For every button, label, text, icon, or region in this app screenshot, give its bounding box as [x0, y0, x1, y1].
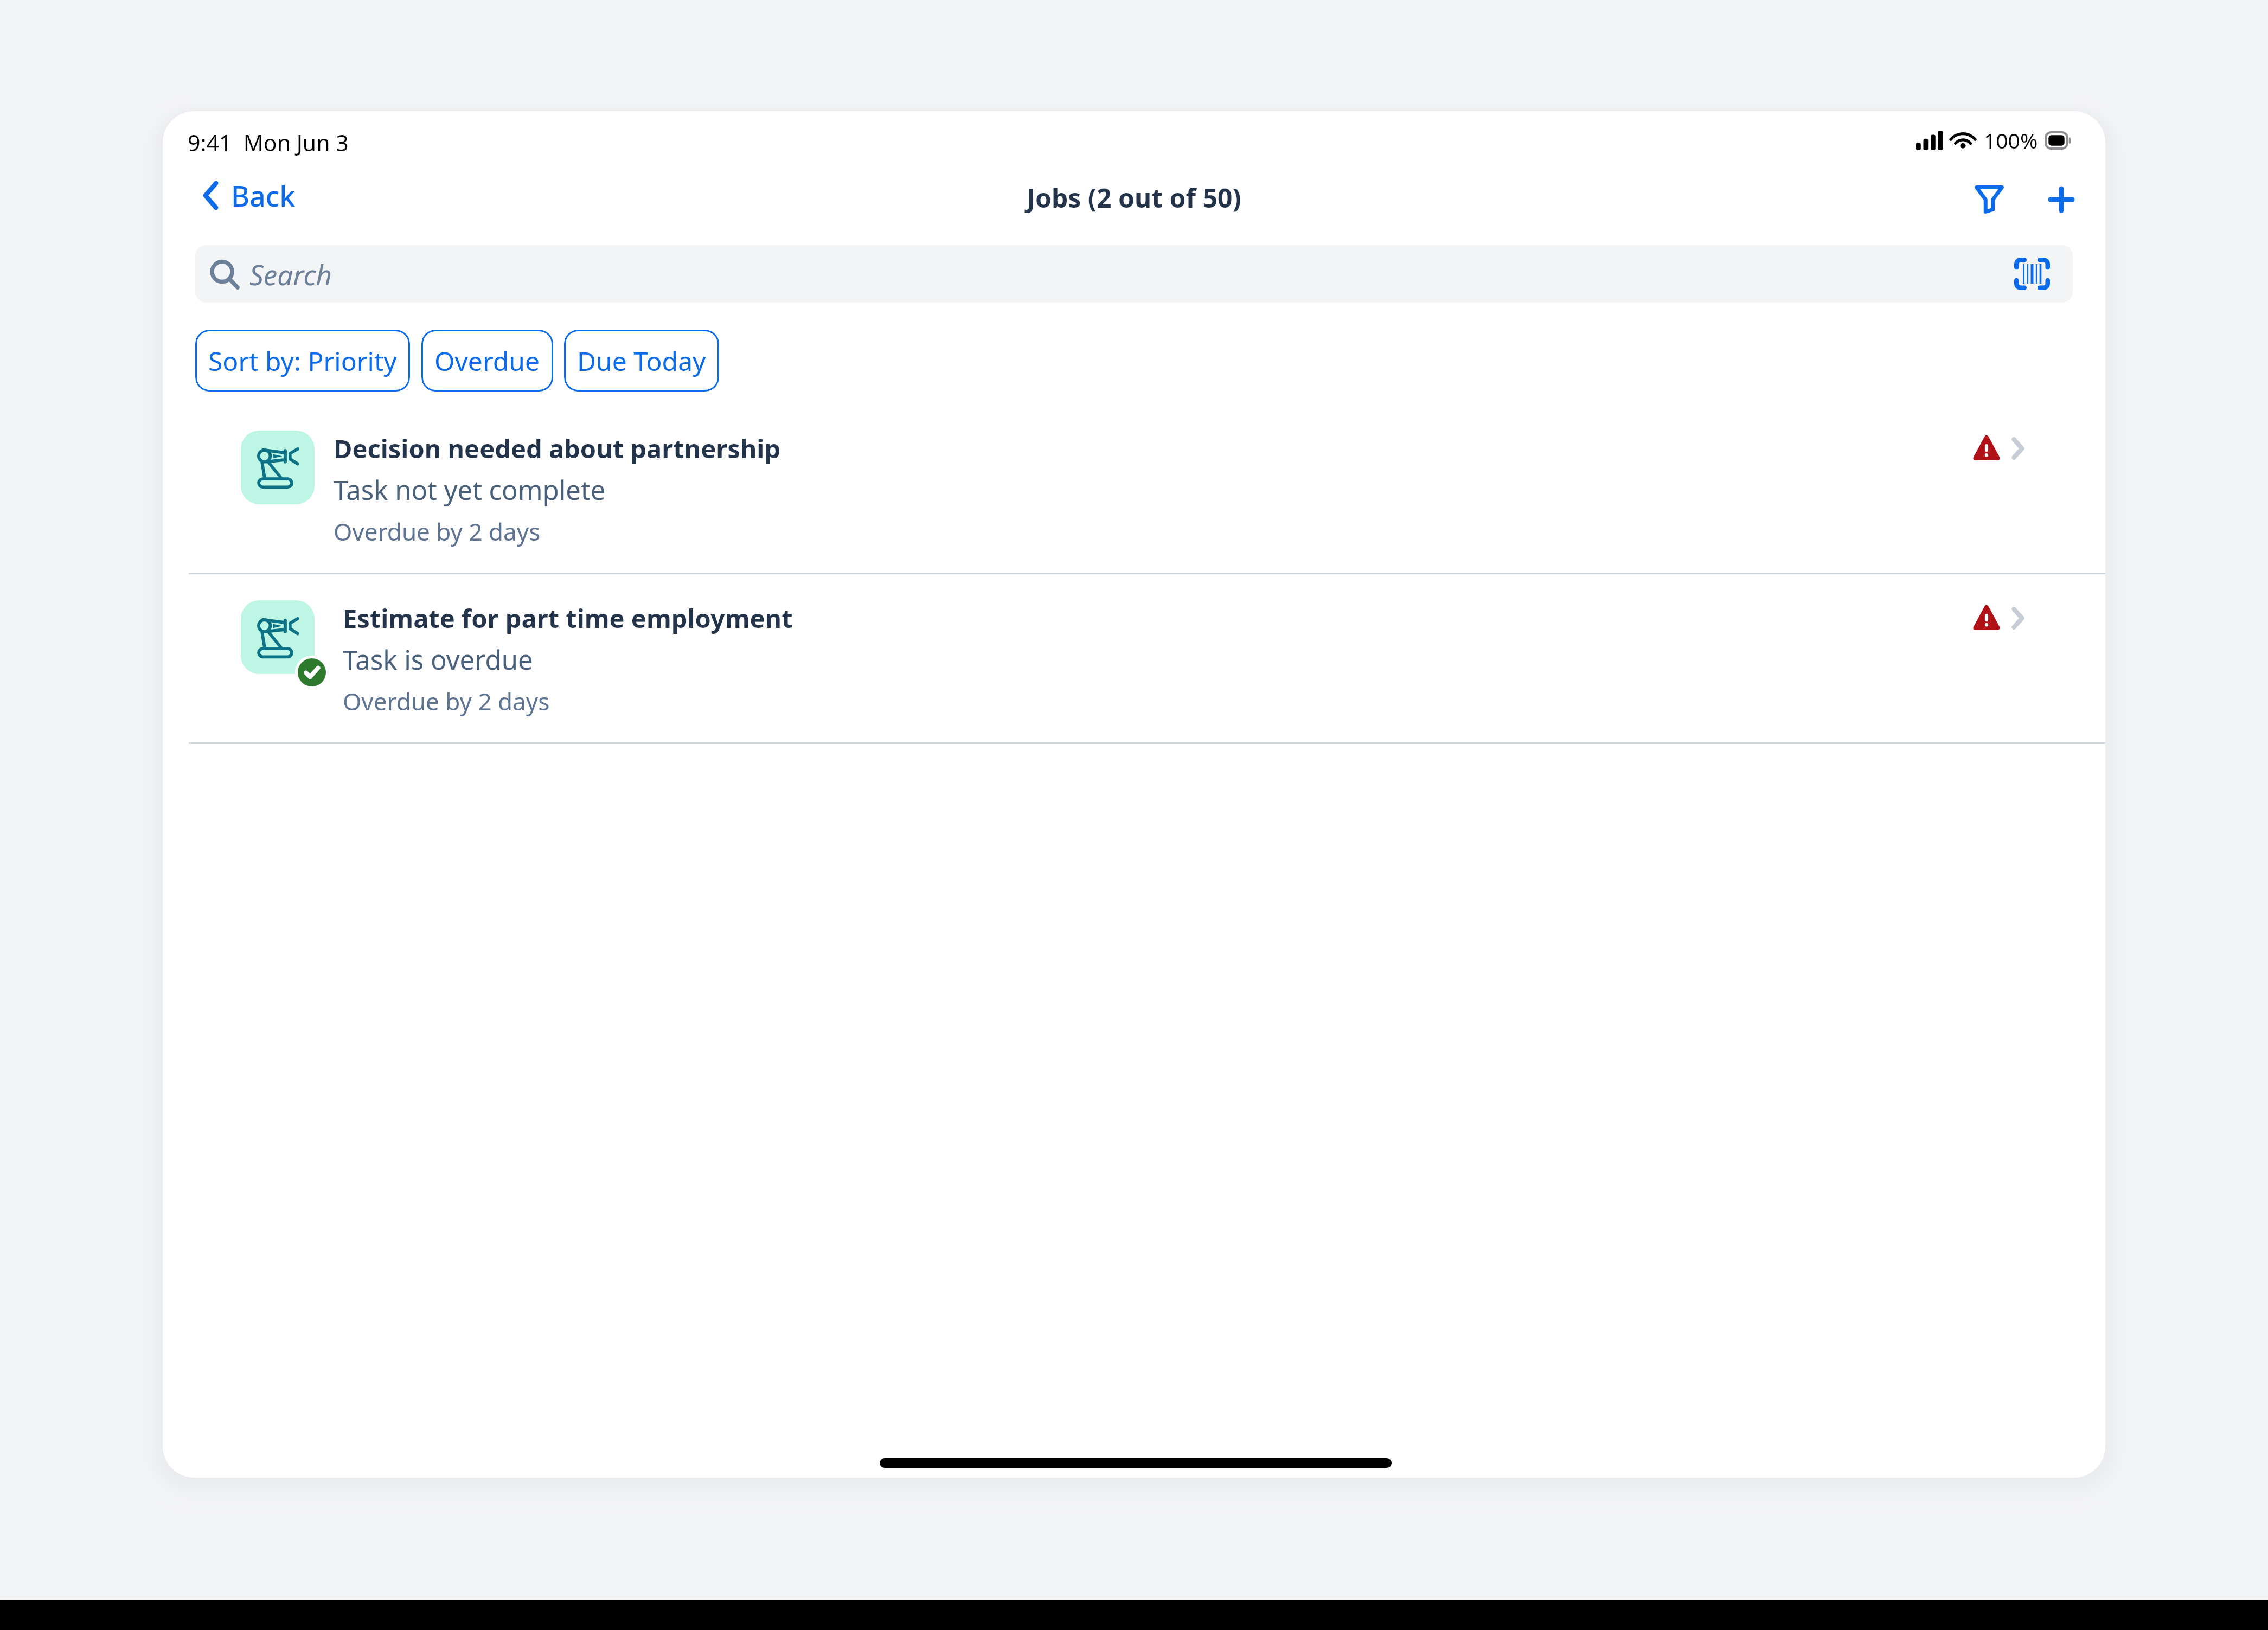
- staticText: Overdue: [434, 343, 540, 378]
- staticText: Jobs (2 out of 50): [1027, 180, 1241, 215]
- other: Open job: [2012, 438, 2024, 459]
- button[interactable]: Decision needed about partnership: [163, 403, 2105, 573]
- other: Open job: [2012, 608, 2024, 628]
- staticText: Search: [249, 255, 332, 293]
- button[interactable]: Add: [2035, 174, 2087, 226]
- staticText: Overdue by 2 days: [343, 685, 550, 717]
- staticText: Back: [231, 176, 296, 215]
- button[interactable]: Scan barcode: [2007, 248, 2058, 299]
- staticText: Sort by: Priority: [208, 343, 397, 378]
- button[interactable]: Overdue: [421, 330, 553, 392]
- staticText: 9:41 Mon Jun 3: [188, 127, 349, 158]
- staticText: Decision needed about partnership: [334, 431, 781, 466]
- button[interactable]: Filter: [1963, 174, 2015, 226]
- staticText: Task is overdue: [343, 641, 533, 678]
- staticText: Overdue by 2 days: [334, 515, 541, 548]
- staticText: Due Today: [577, 343, 706, 378]
- staticText: Task not yet complete: [334, 472, 606, 508]
- button[interactable]: Estimate for part time employment: [163, 573, 2105, 743]
- staticText: Estimate for part time employment: [343, 601, 793, 636]
- button[interactable]: Due Today: [564, 330, 719, 392]
- button[interactable]: Search: [195, 245, 2073, 303]
- staticText: 100%: [1984, 126, 2038, 155]
- button[interactable]: Back: [195, 164, 304, 227]
- button[interactable]: Sort by: Priority: [195, 330, 410, 392]
